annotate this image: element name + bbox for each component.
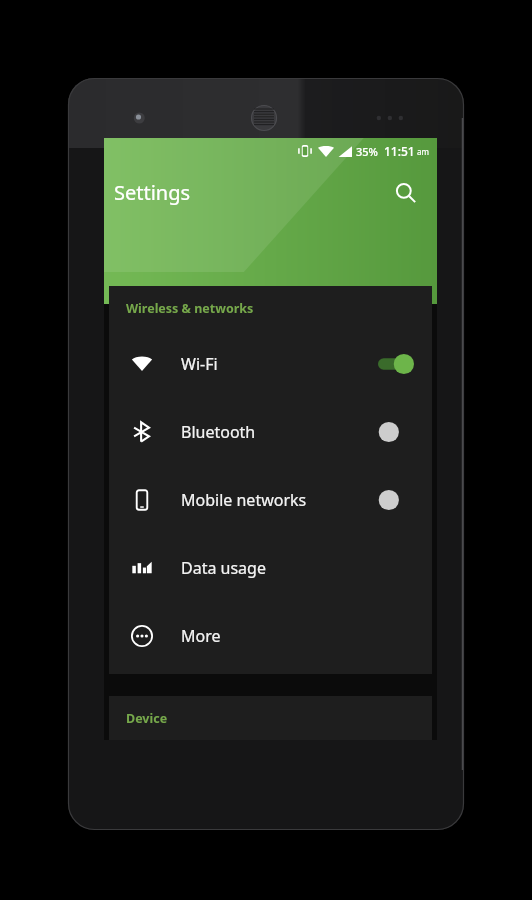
staticText: Wireless & networks bbox=[126, 300, 254, 317]
staticText: Bluetooth bbox=[181, 421, 256, 443]
staticText: Data usage bbox=[181, 557, 266, 579]
button[interactable]: Toggle off bbox=[378, 421, 414, 443]
staticText: Settings bbox=[114, 179, 191, 206]
button[interactable]: Wi-Fi bbox=[109, 330, 432, 398]
staticText: 35% bbox=[356, 144, 378, 159]
staticText: Mobile networks bbox=[181, 489, 307, 511]
staticText: 11:51 bbox=[384, 143, 415, 159]
button[interactable]: Data usage bbox=[109, 534, 432, 602]
staticText: More bbox=[181, 625, 221, 647]
button[interactable]: Search bbox=[385, 172, 425, 212]
button[interactable]: Wi-Fi on bbox=[378, 353, 414, 375]
button[interactable]: Mobile networks bbox=[109, 466, 432, 534]
button[interactable]: More bbox=[109, 602, 432, 670]
staticText: Device bbox=[126, 710, 168, 727]
button[interactable]: Toggle off bbox=[378, 489, 414, 511]
staticText: Wi-Fi bbox=[181, 353, 218, 375]
staticText: am bbox=[417, 146, 429, 157]
button[interactable]: Bluetooth bbox=[109, 398, 432, 466]
